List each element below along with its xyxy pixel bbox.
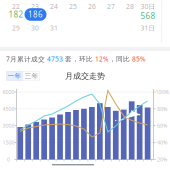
staticText: 31: [50, 24, 58, 32]
staticText: 80%: [157, 105, 167, 112]
staticText: ，同比: [109, 55, 132, 63]
staticText: 568: [140, 11, 155, 21]
staticText: 27: [107, 2, 115, 11]
staticText: 30: [31, 24, 39, 32]
staticText: 28: [126, 2, 134, 11]
staticText: 40%: [157, 139, 167, 146]
staticText: 182: [8, 9, 23, 20]
staticText: 7月累计成交: [6, 55, 47, 63]
staticText: 6000: [2, 88, 14, 96]
staticText: 12%: [95, 55, 109, 63]
staticText: 24: [50, 2, 58, 11]
staticText: 1500: [2, 139, 14, 146]
staticText: 100%: [155, 88, 168, 96]
staticText: 31日: [140, 24, 155, 32]
staticText: 月成交走势: [65, 71, 105, 81]
staticText: 60%: [157, 122, 167, 129]
staticText: 186: [28, 9, 43, 20]
staticText: 85%: [132, 55, 146, 63]
staticText: 23: [31, 2, 39, 11]
staticText: 0: [7, 156, 10, 163]
button[interactable]: 一年: [6, 71, 23, 81]
staticText: 套，环比: [63, 55, 95, 63]
staticText: 一年: [7, 72, 21, 80]
staticText: 30日: [140, 2, 155, 11]
button[interactable]: 三年: [23, 71, 40, 81]
staticText: 22: [12, 2, 20, 11]
staticText: 4500: [2, 105, 14, 112]
staticText: 三年: [24, 72, 38, 80]
staticText: 4753: [47, 55, 63, 63]
staticText: 26: [88, 2, 96, 11]
staticText: 3000: [2, 122, 14, 129]
staticText: 20%: [157, 156, 167, 163]
staticText: 25: [69, 2, 77, 11]
staticText: 29: [12, 24, 20, 32]
